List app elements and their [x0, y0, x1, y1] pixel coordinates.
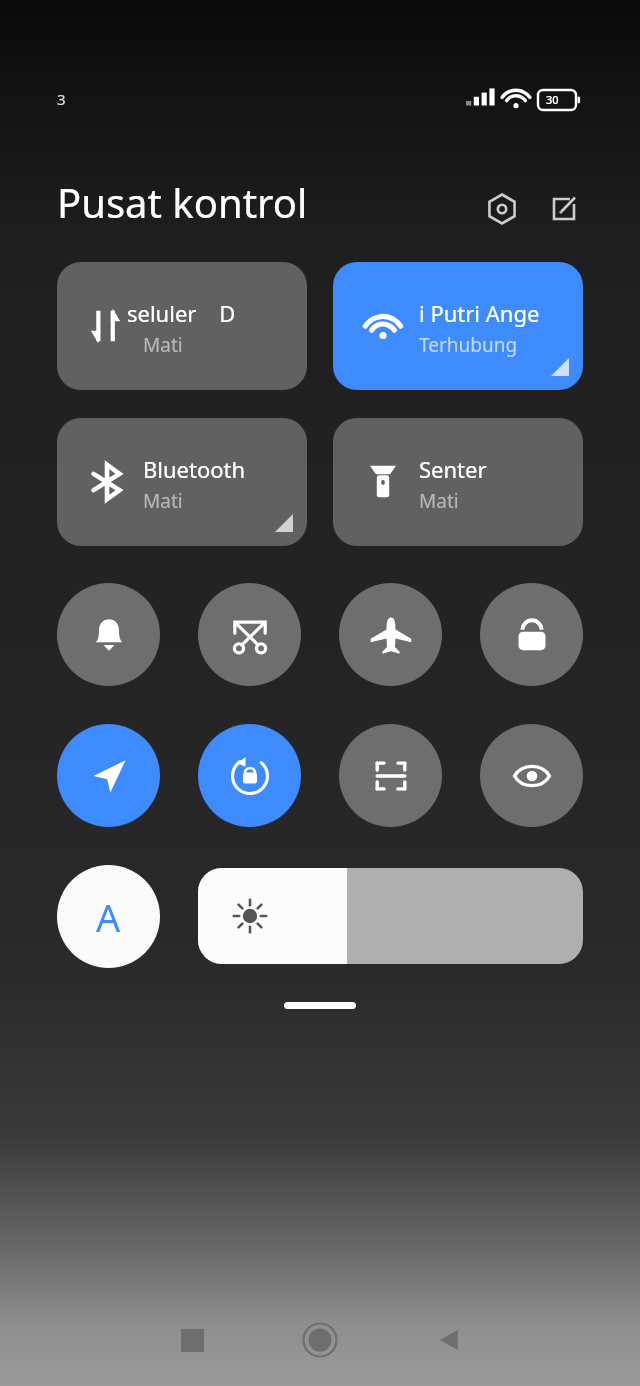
staticText: i Putri Ange [419, 298, 540, 328]
button[interactable]: Recents [160, 1308, 224, 1372]
button[interactable]: Screenshot [198, 583, 301, 686]
button[interactable]: Airplane mode [339, 583, 442, 686]
button[interactable]: Flashlight [333, 418, 583, 546]
staticText: 3 [57, 89, 66, 109]
staticText: Bluetooth [143, 454, 246, 484]
staticText: seluler D [127, 298, 236, 328]
staticText: Senter [419, 454, 487, 484]
button[interactable]: Edit [540, 185, 588, 233]
staticText: Mati [143, 488, 183, 514]
staticText: Pusat kontrol [57, 175, 308, 229]
button[interactable]: Silent [57, 583, 160, 686]
button[interactable]: Settings [478, 185, 526, 233]
button[interactable]: Home [288, 1308, 352, 1372]
staticText: Terhubung [419, 332, 518, 358]
button[interactable]: Wi-Fi [333, 262, 583, 390]
button[interactable]: Reading mode [480, 724, 583, 827]
staticText: 30 [546, 92, 559, 107]
button[interactable]: Location [57, 724, 160, 827]
button[interactable]: Mobile data [57, 262, 307, 390]
button[interactable]: Brightness [198, 868, 583, 964]
staticText: Mati [419, 488, 459, 514]
staticText: A [96, 891, 121, 943]
button[interactable]: Rotation lock [198, 724, 301, 827]
button[interactable]: Bluetooth [57, 418, 307, 546]
staticText: Mati [143, 332, 183, 358]
button[interactable]: Scan [339, 724, 442, 827]
button[interactable]: Lock [480, 583, 583, 686]
button[interactable]: Back [418, 1308, 482, 1372]
button[interactable]: Auto brightness [57, 865, 160, 968]
